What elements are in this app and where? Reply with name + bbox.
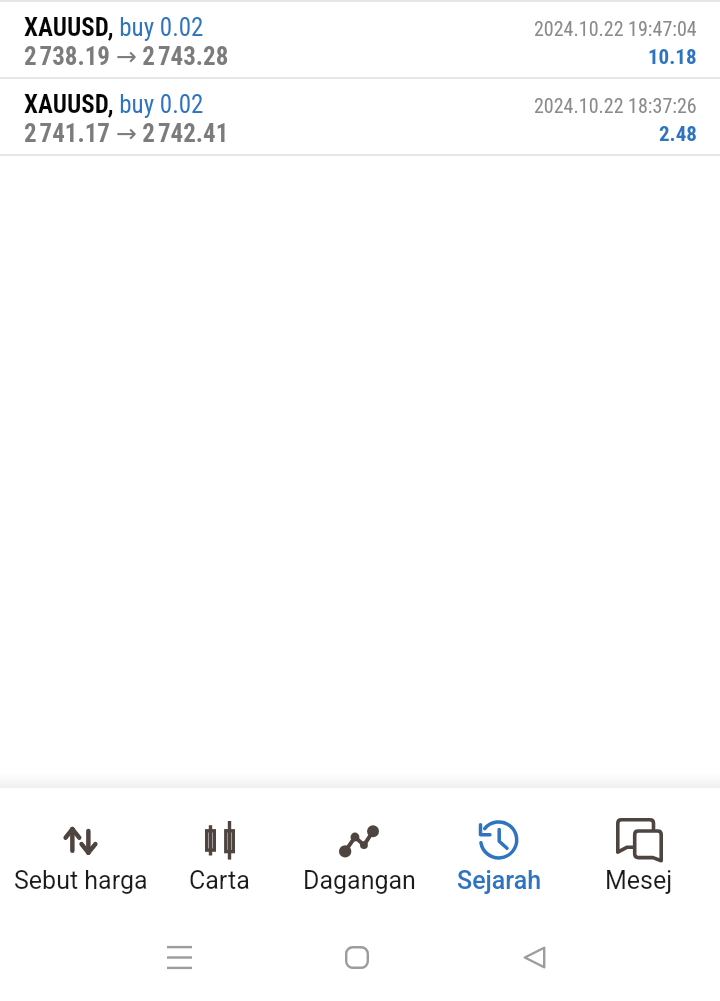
button[interactable]: Dagangan — [289, 788, 429, 916]
staticText: 2 738.19 → 2 743.28 — [24, 42, 229, 71]
button[interactable]: Sejarah — [429, 788, 569, 916]
button[interactable]: Sebut harga — [11, 788, 150, 916]
staticText: Carta — [189, 866, 250, 895]
staticText: Dagangan — [303, 866, 416, 895]
staticText: Sejarah — [457, 866, 542, 895]
button[interactable]: Back — [502, 925, 566, 989]
staticText: Mesej — [605, 866, 673, 895]
staticText: 2.48 — [659, 122, 697, 147]
button[interactable]: Mesej — [569, 788, 709, 916]
staticText: XAUUSD, buy 0.02 — [24, 13, 204, 42]
button[interactable]: Carta — [150, 788, 289, 916]
staticText: 2024.10.22 18:37:26 — [534, 94, 697, 117]
staticText: XAUUSD, buy 0.02 — [24, 90, 204, 119]
button[interactable]: Recents — [147, 925, 211, 989]
staticText: 2 741.17 → 2 742.41 — [24, 119, 229, 148]
staticText: 2024.10.22 19:47:04 — [534, 17, 697, 40]
button[interactable]: XAUUSD, buy 0.02 — [0, 0, 720, 77]
button[interactable]: Home — [325, 925, 389, 989]
staticText: Sebut harga — [14, 866, 148, 895]
button[interactable]: XAUUSD, buy 0.02 — [0, 77, 720, 154]
staticText: 10.18 — [648, 45, 697, 70]
